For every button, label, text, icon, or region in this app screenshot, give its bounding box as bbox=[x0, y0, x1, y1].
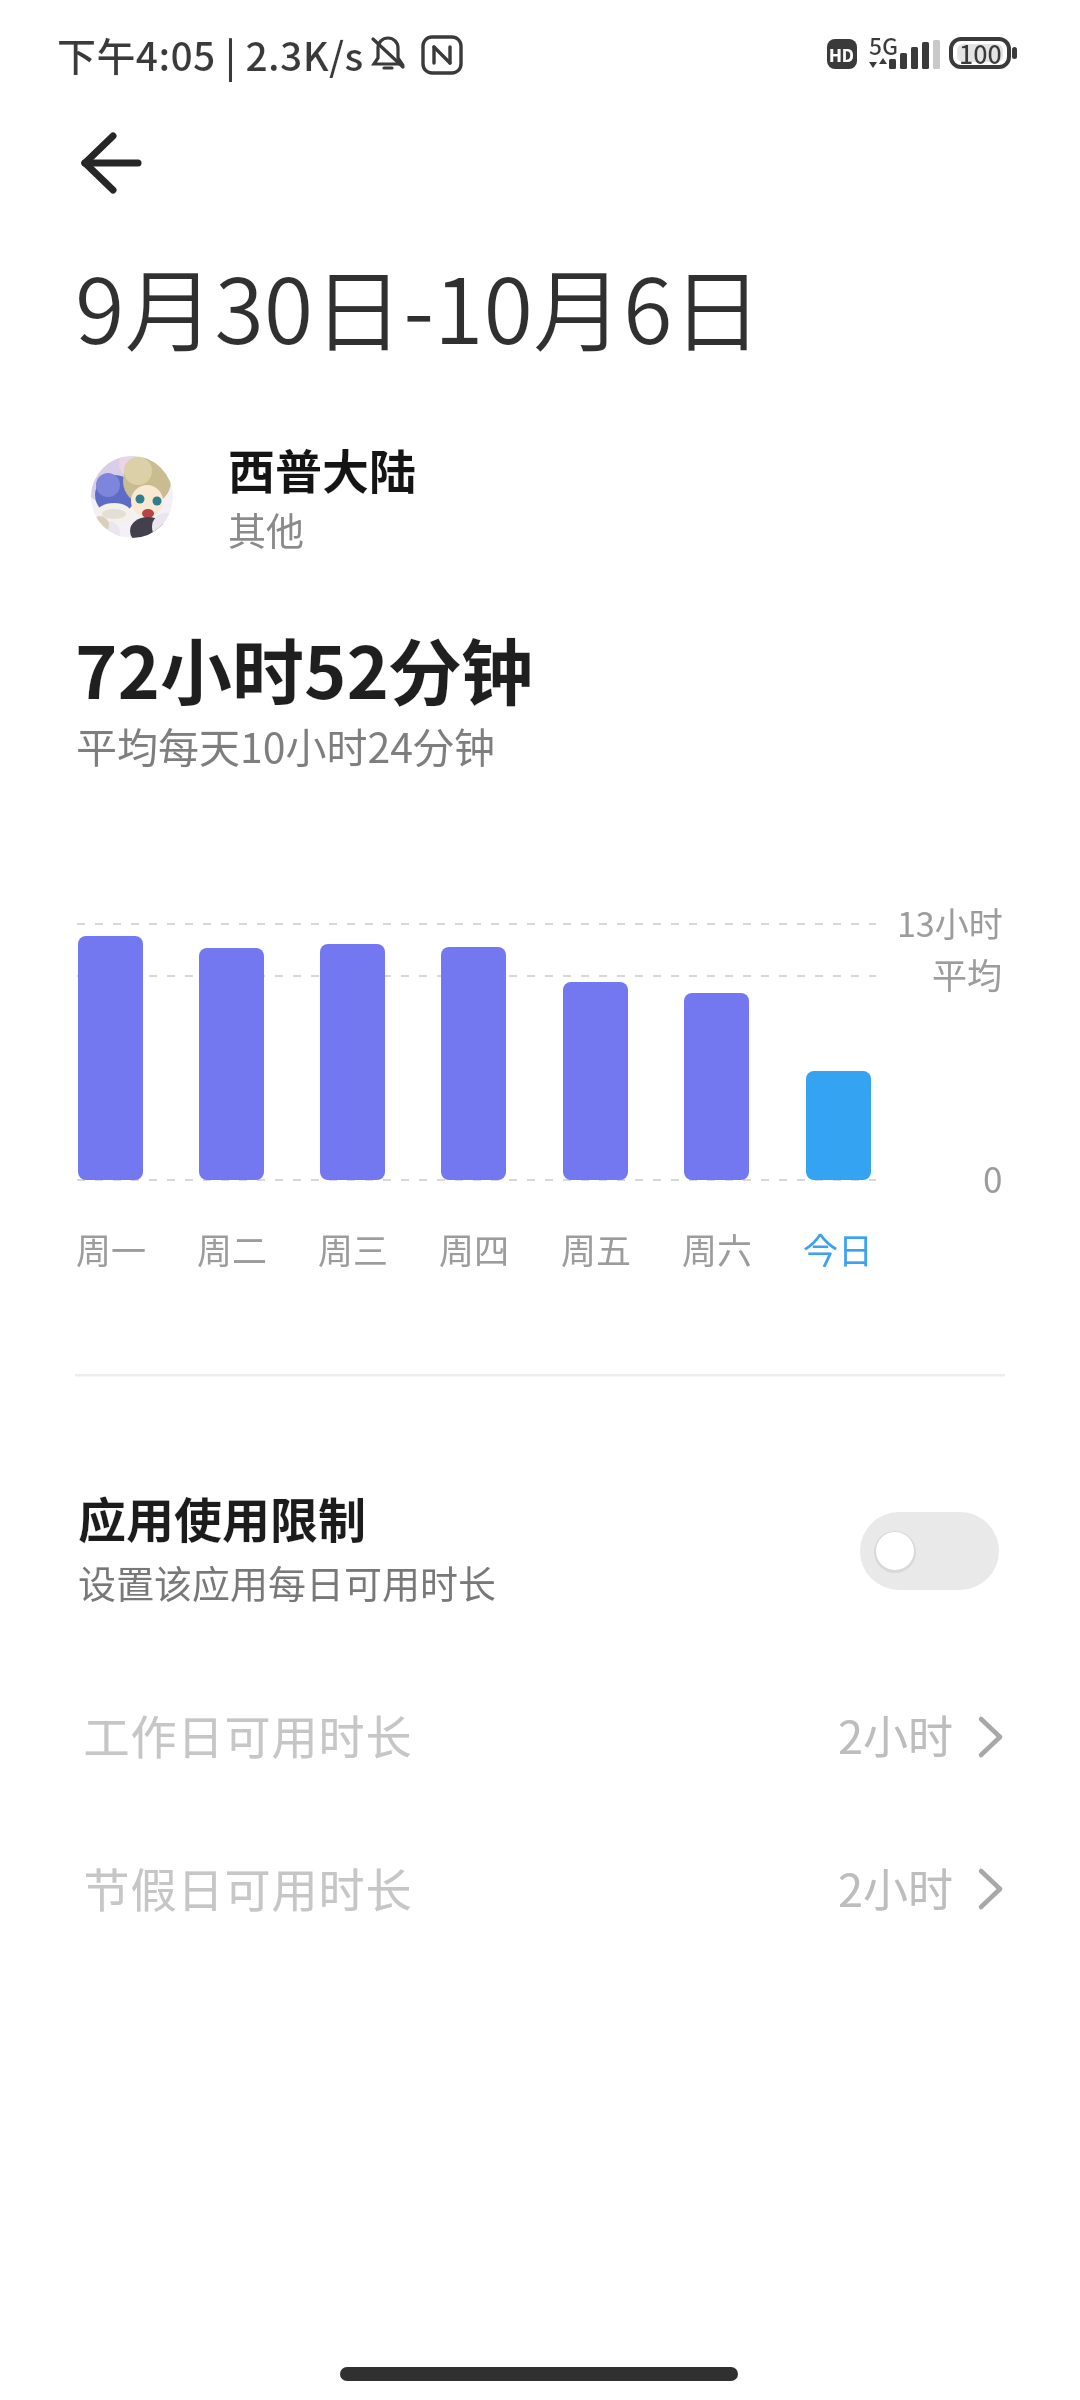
button[interactable] bbox=[60, 130, 160, 200]
staticText: 周六 bbox=[682, 1223, 753, 1274]
staticText: 0 bbox=[983, 1152, 1003, 1203]
button[interactable] bbox=[75, 445, 1005, 550]
staticText: 节假日可用时长 bbox=[83, 1854, 412, 1921]
staticText: 2小时 bbox=[838, 1702, 953, 1767]
staticText: 72小时52分钟 bbox=[75, 615, 533, 719]
staticText: 周一 bbox=[76, 1223, 147, 1274]
staticText: 平均 bbox=[932, 948, 1003, 999]
staticText: 周三 bbox=[318, 1223, 389, 1274]
staticText: 应用使用限制 bbox=[78, 1482, 367, 1552]
staticText: 100 bbox=[959, 35, 1002, 71]
staticText: 13小时 bbox=[897, 898, 1003, 947]
staticText: 周五 bbox=[561, 1223, 632, 1274]
staticText: 工作日可用时长 bbox=[83, 1701, 412, 1768]
staticText: 西普大陆 bbox=[228, 434, 416, 502]
button[interactable] bbox=[0, 1663, 1080, 1813]
button[interactable] bbox=[845, 1505, 1015, 1600]
staticText: 9月30日-10月6日 bbox=[75, 240, 763, 370]
staticText: 2小时 bbox=[838, 1855, 953, 1920]
staticText: 下午4:05 | 2.3K/s bbox=[57, 26, 364, 82]
staticText: 平均每天10小时24分钟 bbox=[76, 715, 496, 774]
staticText: 今日 bbox=[803, 1223, 874, 1274]
staticText: 5G bbox=[869, 28, 899, 61]
staticText: HD bbox=[829, 42, 855, 67]
staticText: 其他 bbox=[228, 501, 305, 556]
staticText: 周四 bbox=[439, 1223, 510, 1274]
button[interactable] bbox=[0, 1815, 1080, 1965]
staticText: 设置该应用每日可用时长 bbox=[78, 1554, 497, 1609]
staticText: 周二 bbox=[197, 1223, 268, 1274]
